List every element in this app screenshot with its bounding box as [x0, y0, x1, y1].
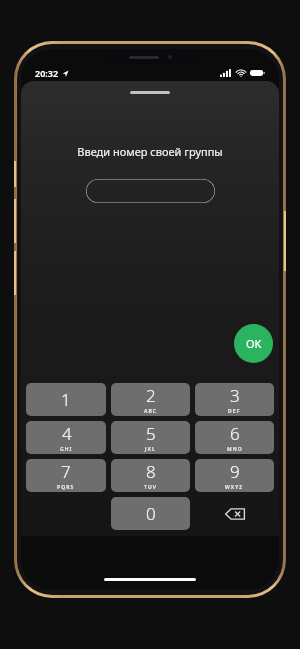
button[interactable]: 7 — [26, 459, 106, 492]
button[interactable]: 8 — [111, 459, 190, 492]
button[interactable]: OK — [234, 324, 273, 363]
button[interactable]: 5 — [111, 421, 190, 454]
button[interactable] — [86, 179, 215, 203]
staticText: 2 — [146, 384, 156, 407]
staticText: PQRS — [57, 484, 75, 491]
button[interactable]: 6 — [195, 421, 274, 454]
staticText: 20:32 — [35, 67, 59, 79]
button[interactable]: 9 — [195, 459, 274, 492]
staticText: 5 — [146, 422, 156, 445]
staticText: 6 — [230, 422, 240, 445]
button[interactable]: Backspace — [195, 497, 274, 530]
staticText: JKL — [145, 446, 156, 453]
staticText: WXYZ — [225, 484, 244, 491]
staticText: 3 — [230, 384, 240, 407]
staticText: DEF — [228, 408, 241, 415]
staticText: Введи номер своей группы — [77, 144, 223, 159]
staticText: 1 — [61, 388, 71, 411]
button[interactable]: 2 — [111, 383, 190, 416]
staticText: MNO — [227, 446, 243, 453]
staticText: 7 — [61, 460, 71, 483]
staticText: ABC — [144, 408, 158, 415]
staticText: 8 — [146, 460, 156, 483]
button[interactable]: 1 — [26, 383, 106, 416]
staticText: 4 — [62, 422, 72, 445]
staticText: TUV — [144, 484, 158, 491]
button[interactable]: 0 — [111, 497, 190, 530]
staticText: 9 — [230, 460, 240, 483]
button[interactable]: 3 — [195, 383, 274, 416]
button[interactable]: 4 — [26, 421, 106, 454]
staticText: OK — [246, 336, 262, 351]
staticText: GHI — [60, 446, 73, 453]
staticText: 0 — [146, 502, 156, 525]
